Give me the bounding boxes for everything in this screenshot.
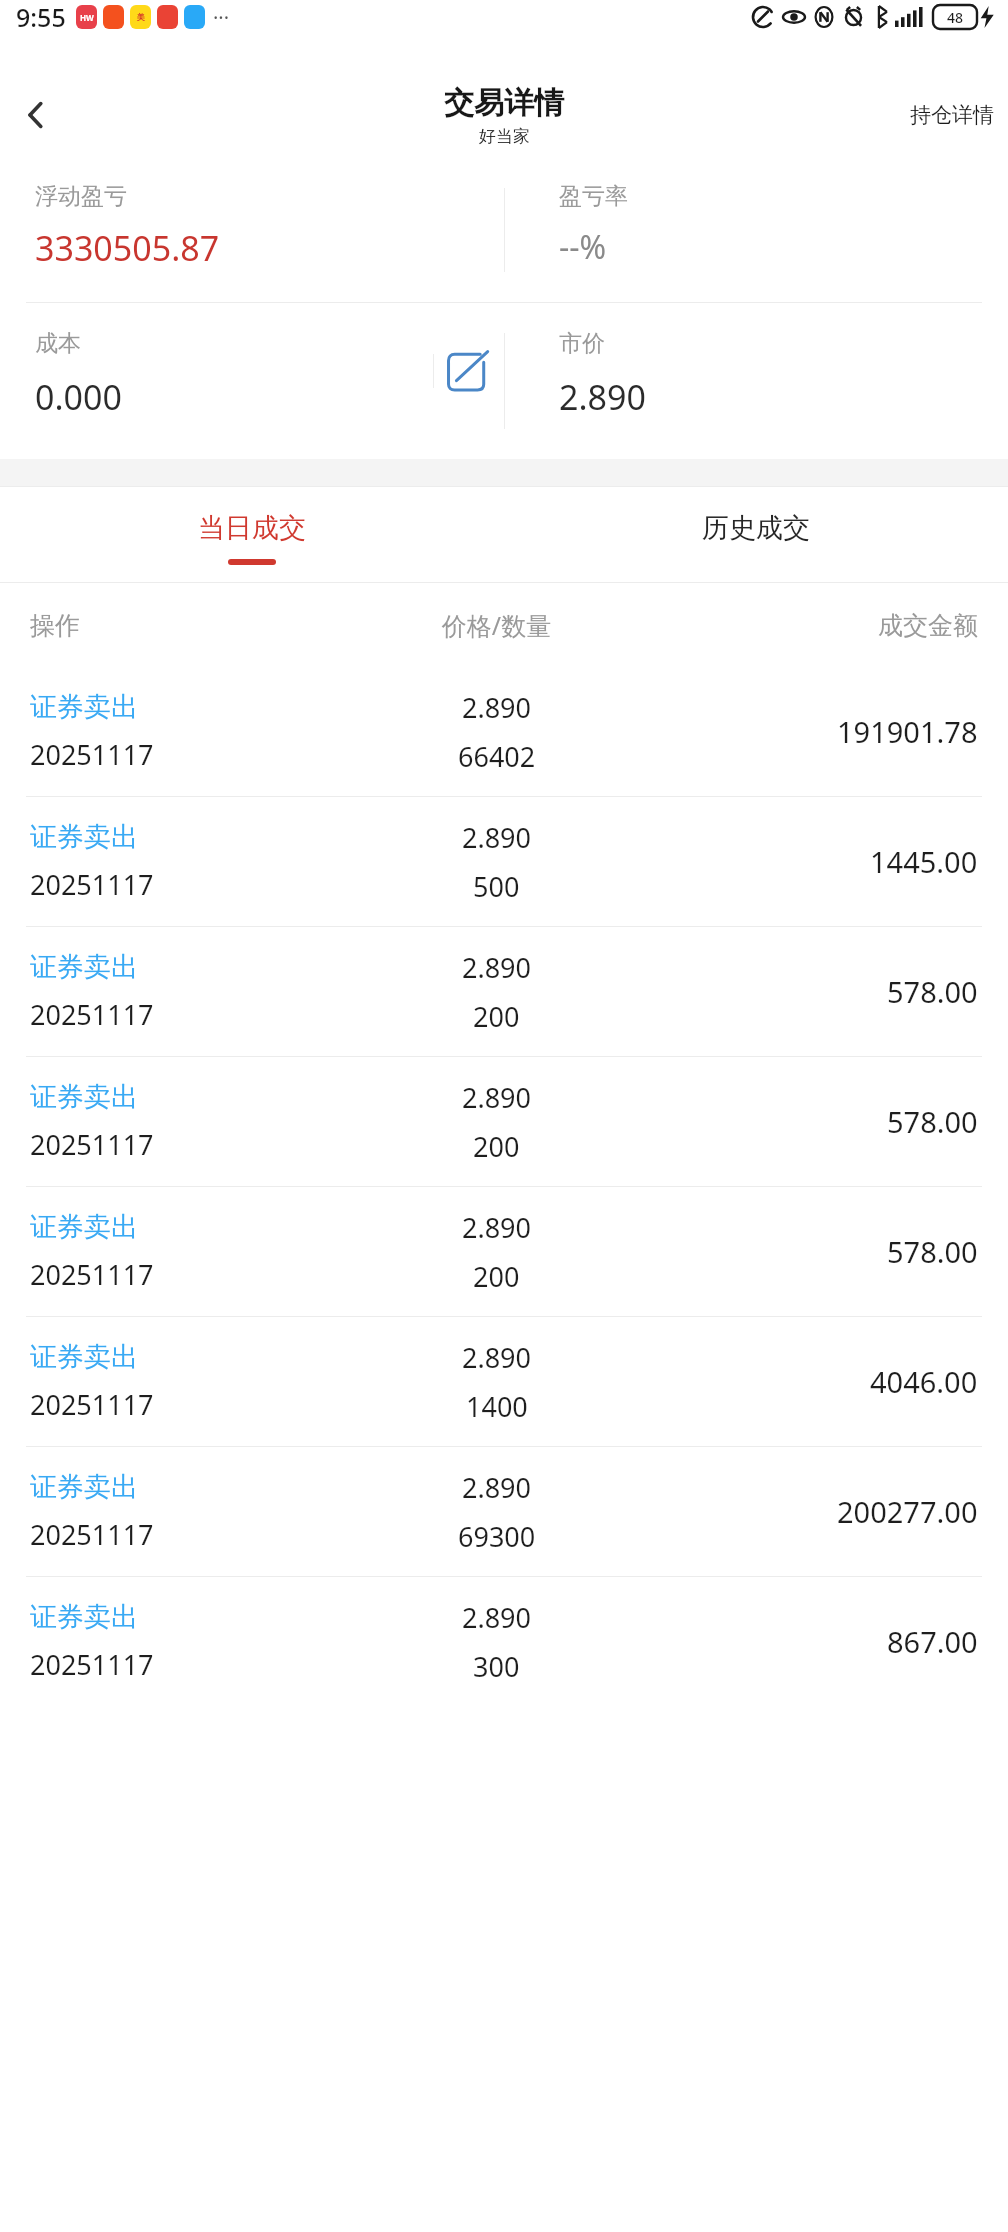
staticText: 578.00 [887,1102,978,1141]
staticText: 300 [473,1648,520,1685]
button[interactable]: 证券卖出 [0,667,1008,796]
staticText: 200 [473,1128,520,1165]
staticText: 66402 [458,738,536,775]
button[interactable]: Back [8,87,64,143]
staticText: 2.890 [462,1209,532,1246]
staticText: 2.890 [462,1469,532,1506]
staticText: 69300 [458,1518,536,1555]
staticText: 浮动盈亏 [35,182,127,211]
staticText: 价格/数量 [336,608,657,642]
staticText: 当日成交 [198,511,306,545]
staticText: 历史成交 [702,511,810,545]
staticText: 证券卖出 [30,690,138,724]
staticText: 2.890 [462,949,532,986]
staticText: 20251117 [30,1516,154,1553]
staticText: 20251117 [30,1126,154,1163]
staticText: 20251117 [30,736,154,773]
button[interactable]: 证券卖出 [0,797,1008,926]
staticText: 578.00 [887,972,978,1011]
staticText: 867.00 [887,1622,978,1661]
staticText: 市价 [559,329,605,358]
staticText: 证券卖出 [30,1080,138,1114]
staticText: 2.890 [462,1079,532,1116]
staticText: 0.000 [35,374,122,420]
staticText: 200 [473,998,520,1035]
staticText: 成本 [35,329,81,358]
staticText: 证券卖出 [30,1470,138,1504]
staticText: 交易详情 [444,84,564,122]
staticText: 3330505.87 [35,225,220,271]
button[interactable]: 证券卖出 [0,1187,1008,1316]
staticText: 9:55 [16,0,66,34]
staticText: 20251117 [30,1646,154,1683]
button[interactable]: 证券卖出 [0,1057,1008,1186]
staticText: 48 [947,8,964,27]
staticText: 2.890 [462,689,532,726]
staticText: 200277.00 [837,1492,978,1531]
staticText: 成交金额 [657,610,978,641]
staticText: 20251117 [30,866,154,903]
staticText: 持仓详情 [910,102,994,128]
button[interactable]: Edit cost [444,348,490,394]
staticText: 1445.00 [870,842,978,881]
staticText: 好当家 [479,126,530,147]
staticText: HW [80,12,94,23]
button[interactable]: 证券卖出 [0,1447,1008,1576]
staticText: 证券卖出 [30,1340,138,1374]
staticText: 证券卖出 [30,1600,138,1634]
staticText: ··· [213,4,230,31]
button[interactable]: 历史成交 [504,487,1008,583]
button[interactable]: 持仓详情 [896,88,1008,142]
staticText: 2.890 [462,1339,532,1376]
staticText: 2.890 [559,374,646,420]
staticText: 578.00 [887,1232,978,1271]
staticText: 证券卖出 [30,950,138,984]
staticText: 证券卖出 [30,1210,138,1244]
staticText: 美 [137,12,145,22]
button[interactable]: 当日成交 [0,487,504,583]
staticText: 20251117 [30,1386,154,1423]
staticText: 盈亏率 [559,182,628,211]
staticText: 2.890 [462,819,532,856]
staticText: 操作 [30,610,336,641]
staticText: 191901.78 [837,712,978,751]
button[interactable]: 证券卖出 [0,927,1008,1056]
button[interactable]: 证券卖出 [0,1577,1008,1706]
staticText: --% [559,225,607,269]
staticText: 2.890 [462,1599,532,1636]
staticText: 500 [473,868,520,905]
staticText: 证券卖出 [30,820,138,854]
staticText: 20251117 [30,1256,154,1293]
staticText: 200 [473,1258,520,1295]
staticText: 20251117 [30,996,154,1033]
staticText: 1400 [466,1388,528,1425]
button[interactable]: 证券卖出 [0,1317,1008,1446]
staticText: 4046.00 [870,1362,978,1401]
